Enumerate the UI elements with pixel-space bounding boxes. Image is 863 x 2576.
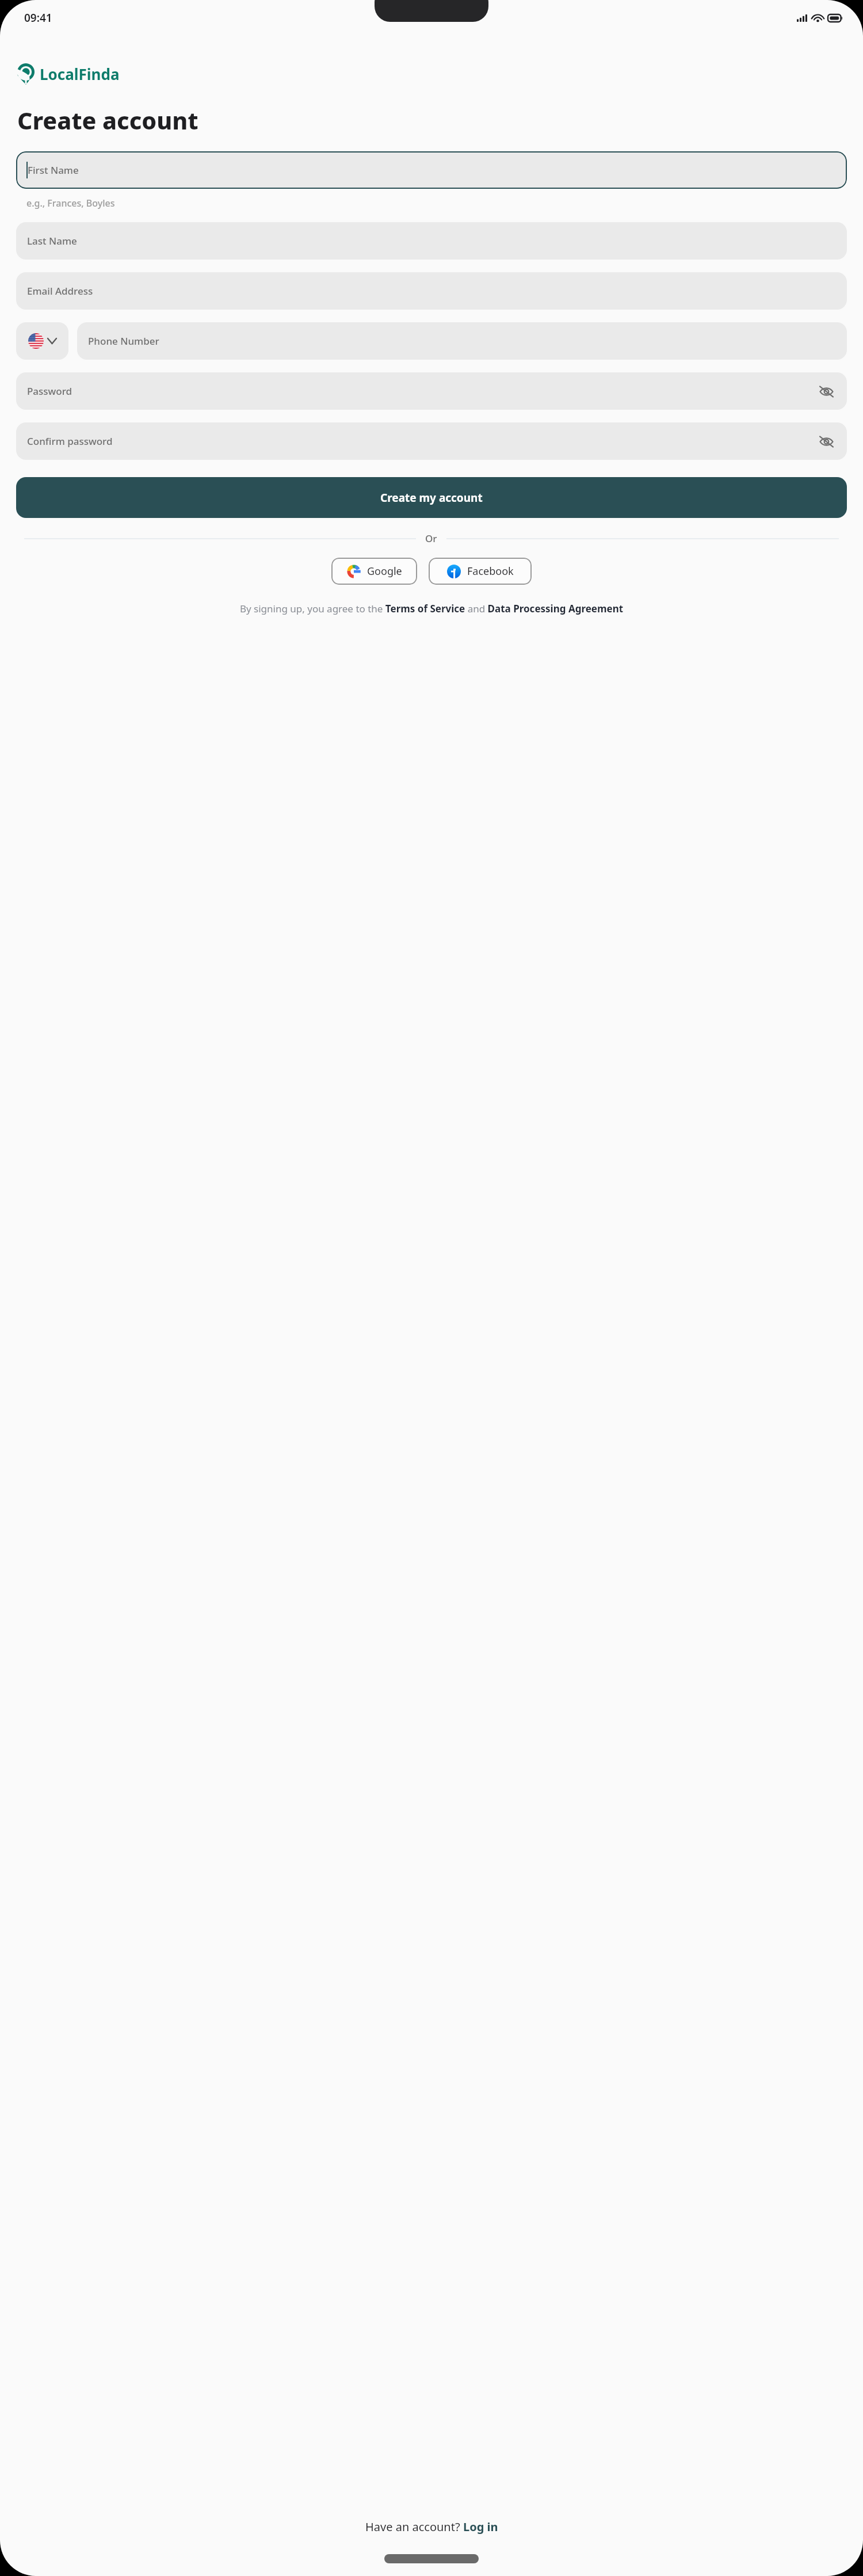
button[interactable]: Google [331, 558, 417, 585]
button[interactable]: Show password [816, 432, 836, 451]
button[interactable]: Have an account? [0, 2519, 863, 2535]
staticText: Phone Number [88, 334, 159, 348]
button[interactable]: Create my account [16, 477, 847, 518]
staticText: Facebook [467, 564, 514, 578]
button[interactable]: Show password [816, 382, 836, 401]
button[interactable]: Email Address [16, 272, 847, 310]
staticText: 09:41 [24, 10, 52, 25]
button[interactable]: First Name [16, 151, 847, 189]
button[interactable]: Password [16, 372, 847, 410]
button[interactable]: By signing up, you agree to the Terms of… [21, 602, 842, 615]
staticText: Confirm password [27, 435, 113, 448]
button[interactable]: Phone Number [77, 322, 847, 360]
staticText: Last Name [27, 234, 77, 247]
button[interactable]: Facebook [429, 558, 532, 585]
staticText: Google [367, 564, 402, 578]
staticText: Or [425, 532, 437, 545]
staticText: LocalFinda [40, 64, 120, 84]
staticText: Create my account [380, 490, 483, 505]
staticText: Have an account? [365, 2519, 463, 2535]
staticText: e.g., Frances, Boyles [26, 197, 115, 209]
staticText: First Name [28, 163, 79, 177]
staticText: Email Address [27, 284, 93, 298]
staticText: Log in [463, 2519, 498, 2535]
staticText: Create account [17, 104, 198, 136]
staticText: Password [27, 384, 72, 398]
button[interactable]: Last Name [16, 222, 847, 260]
button[interactable]: Confirm password [16, 422, 847, 460]
button[interactable]: Select country code [16, 322, 68, 360]
